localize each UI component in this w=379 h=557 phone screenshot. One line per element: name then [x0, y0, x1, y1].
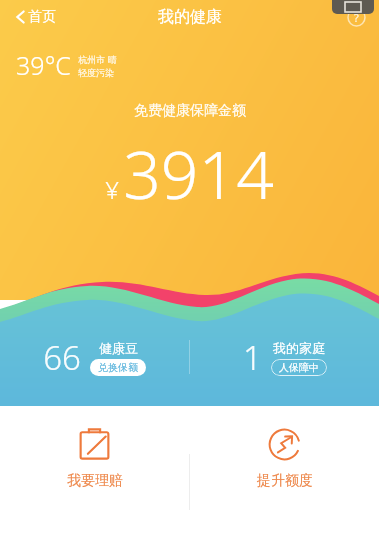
staticText: 66 [43, 335, 81, 380]
staticText: 我要理赔 [67, 472, 123, 490]
staticText: ¥ [105, 173, 119, 206]
staticText: 1 [243, 335, 262, 380]
staticText: 免费健康保障金额 [134, 102, 246, 120]
button[interactable]: 1 [190, 320, 379, 394]
staticText: 3914 [123, 128, 274, 218]
staticText: 我的家庭 [273, 340, 325, 356]
staticText: 39°C [16, 48, 71, 82]
staticText: 轻度污染 [78, 67, 114, 78]
button[interactable]: Help [343, 4, 369, 30]
staticText: 杭州市 晴 [78, 53, 117, 65]
staticText: 首页 [28, 8, 56, 26]
staticText: 人保障中 [279, 361, 319, 374]
staticText: 我的健康 [158, 7, 222, 27]
button[interactable]: 首页 [10, 5, 62, 29]
staticText: 兑换保额 [98, 361, 138, 374]
staticText: 健康豆 [99, 340, 138, 356]
staticText: 提升额度 [257, 472, 313, 490]
button[interactable]: 我要理赔 [0, 406, 189, 557]
button[interactable]: 提升额度 [190, 406, 379, 557]
staticText: ? [354, 10, 359, 25]
button[interactable]: 66 [0, 320, 189, 394]
